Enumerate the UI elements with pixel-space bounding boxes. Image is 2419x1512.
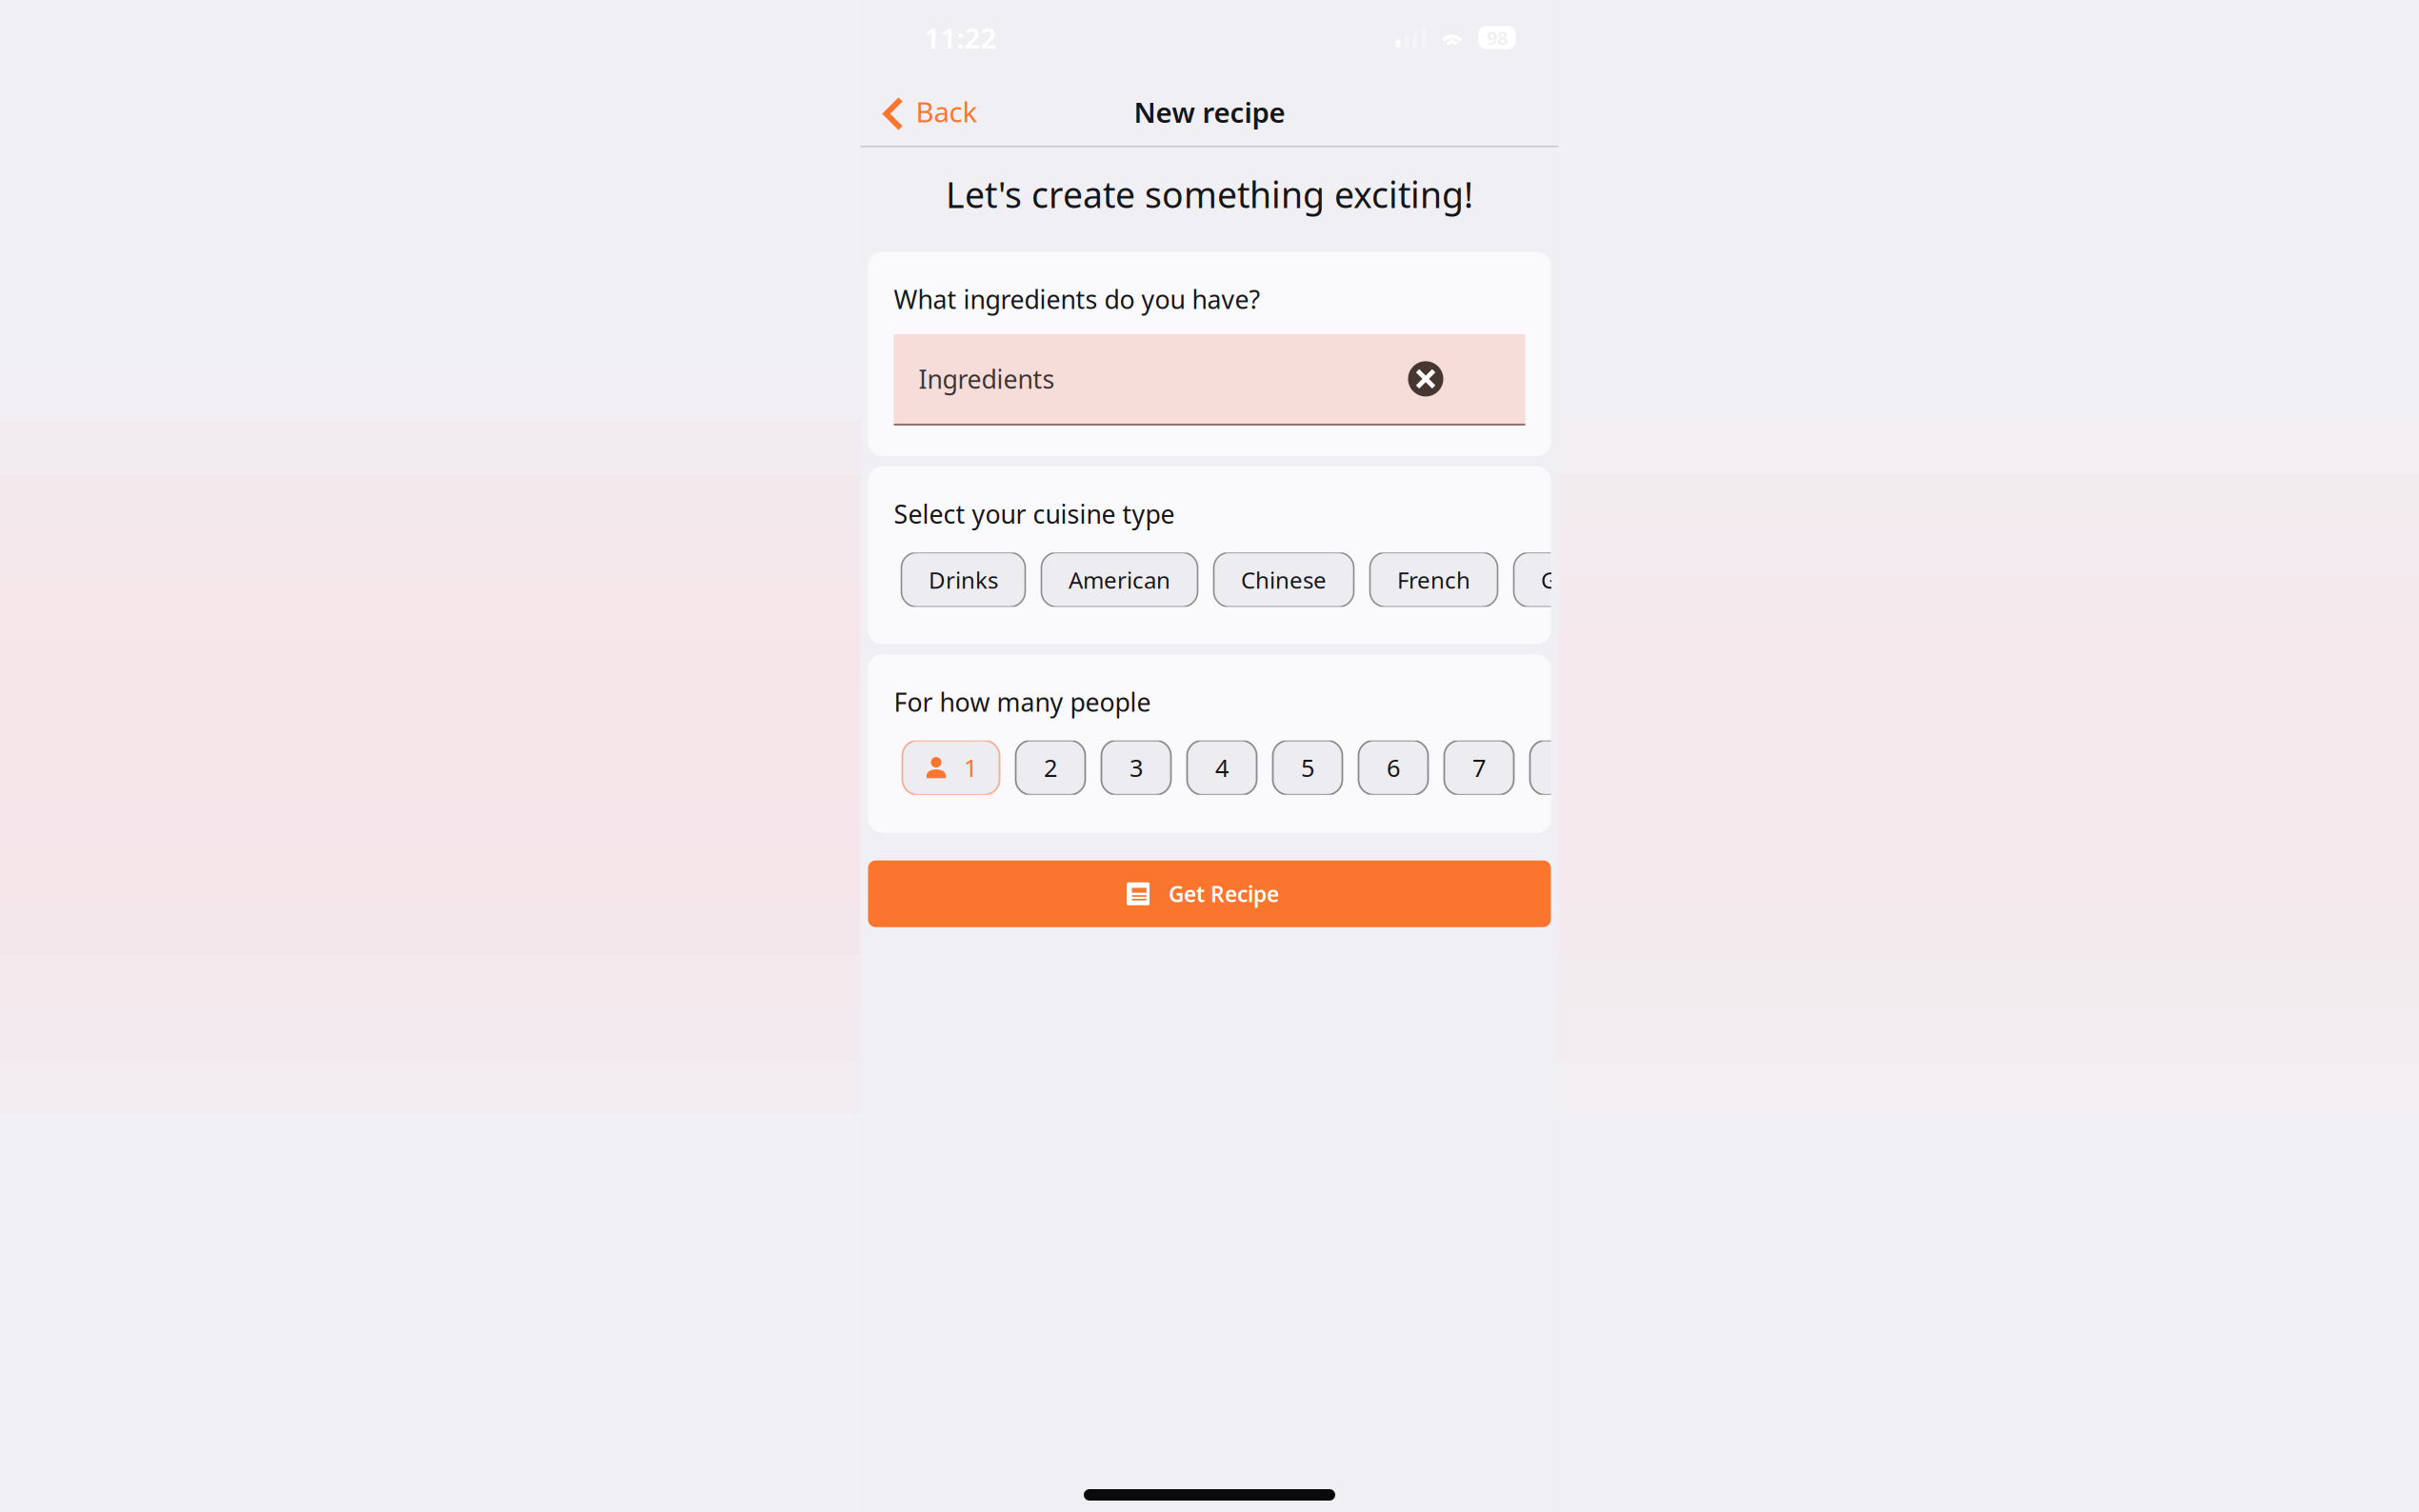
staticText: What ingredients do you have? bbox=[894, 282, 1260, 316]
staticText: Drinks bbox=[929, 565, 998, 595]
staticText: 7 bbox=[1472, 752, 1486, 784]
staticText: New recipe bbox=[1134, 93, 1285, 130]
staticText: Chinese bbox=[1241, 565, 1327, 595]
staticText: American bbox=[1069, 565, 1170, 595]
staticText: 6 bbox=[1387, 752, 1400, 784]
staticText: Select your cuisine type bbox=[894, 497, 1175, 531]
button[interactable]: 7 bbox=[1444, 740, 1514, 795]
staticText: Let's create something exciting! bbox=[946, 171, 1473, 218]
staticText: Greek bbox=[1541, 565, 1605, 595]
staticText: Get Recipe bbox=[1169, 879, 1279, 908]
button[interactable]: 2 bbox=[1016, 740, 1085, 795]
button[interactable]: 1 bbox=[902, 740, 1000, 795]
staticText: French bbox=[1397, 565, 1470, 595]
staticText: Ingredients bbox=[919, 362, 1055, 396]
staticText: 11:22 bbox=[924, 19, 997, 56]
button[interactable]: Clear ingredients bbox=[1408, 361, 1525, 396]
button[interactable]: American bbox=[1041, 553, 1198, 607]
button[interactable]: Drinks bbox=[901, 553, 1025, 607]
staticText: 2 bbox=[1044, 752, 1057, 784]
button[interactable]: Greek bbox=[1514, 553, 1632, 607]
button[interactable]: Back bbox=[860, 84, 984, 137]
staticText: For how many people bbox=[894, 685, 1151, 719]
button[interactable]: 8 bbox=[1530, 740, 1599, 795]
button[interactable]: 4 bbox=[1187, 740, 1257, 795]
button[interactable]: 5 bbox=[1273, 740, 1342, 795]
staticText: Back bbox=[916, 93, 978, 130]
button[interactable]: Chinese bbox=[1214, 553, 1354, 607]
staticText: 98 bbox=[1487, 25, 1508, 50]
button[interactable]: 3 bbox=[1101, 740, 1171, 795]
staticText: 5 bbox=[1301, 752, 1314, 784]
button[interactable]: Get Recipe bbox=[868, 860, 1551, 927]
staticText: 1 bbox=[964, 752, 977, 784]
staticText: 3 bbox=[1130, 752, 1143, 784]
button[interactable]: French bbox=[1370, 553, 1498, 607]
staticText: 4 bbox=[1215, 752, 1229, 784]
button[interactable]: 6 bbox=[1359, 740, 1428, 795]
